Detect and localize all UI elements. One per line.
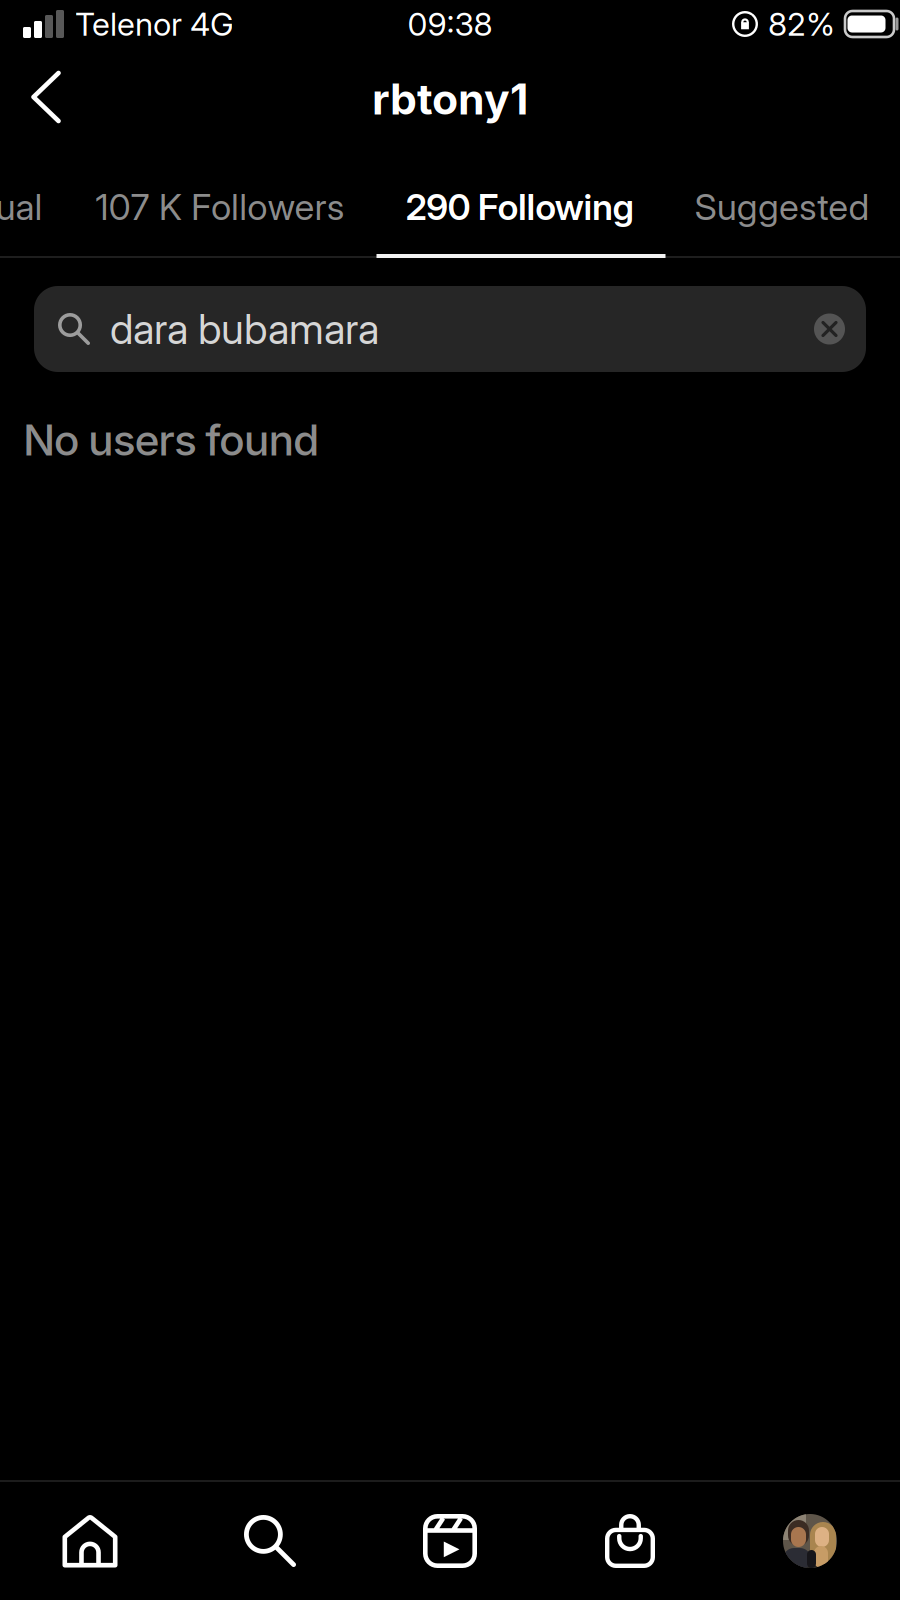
button[interactable]: Reels xyxy=(360,1489,540,1593)
staticText: ual xyxy=(0,185,43,229)
button[interactable]: dara bubamara xyxy=(34,286,866,372)
button[interactable]: Suggested xyxy=(669,157,895,257)
staticText: dara bubamara xyxy=(110,304,379,354)
staticText: 290 Following xyxy=(405,185,635,229)
staticText: Suggested xyxy=(695,185,869,229)
staticText: rbtony1 xyxy=(372,73,528,125)
button[interactable]: ual xyxy=(0,157,69,257)
button[interactable]: 290 Following xyxy=(379,157,661,257)
staticText: 09:38 xyxy=(407,5,492,43)
staticText: 82% xyxy=(768,5,835,43)
button[interactable]: Profile xyxy=(720,1489,900,1593)
staticText: 107 K Followers xyxy=(95,185,345,229)
staticText: Telenor 4G xyxy=(75,5,234,43)
button[interactable]: Search xyxy=(180,1489,360,1593)
button[interactable]: 107 K Followers xyxy=(69,157,371,257)
button[interactable]: Home xyxy=(0,1489,180,1593)
button[interactable]: Shop xyxy=(540,1489,720,1593)
staticText: No users found xyxy=(23,414,319,466)
button[interactable]: Back xyxy=(0,52,94,142)
